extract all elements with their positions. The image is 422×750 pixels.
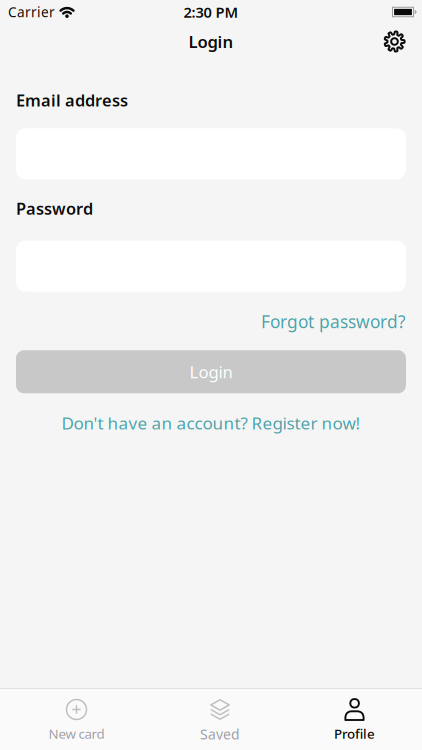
staticText: Don't have an account? Register now! (61, 411, 360, 434)
staticText: Login (189, 360, 232, 383)
staticText: New card (48, 724, 104, 743)
button[interactable]: Login (16, 350, 406, 393)
staticText: Carrier (8, 3, 55, 21)
staticText: 2:30 PM (183, 2, 238, 22)
button[interactable]: New card (0, 689, 153, 743)
staticText: Profile (334, 724, 375, 743)
button[interactable]: Profile (287, 689, 422, 743)
button[interactable]: Settings (383, 30, 422, 53)
button[interactable]: Forgot password? (261, 310, 406, 333)
staticText: Forgot password? (261, 310, 406, 333)
staticText: Login (188, 30, 233, 53)
staticText: Email address (16, 89, 128, 111)
button[interactable]: Saved (153, 689, 287, 744)
button[interactable]: Don't have an account? Register now! (61, 411, 360, 434)
staticText: Password (16, 197, 93, 220)
staticText: Saved (200, 724, 240, 744)
